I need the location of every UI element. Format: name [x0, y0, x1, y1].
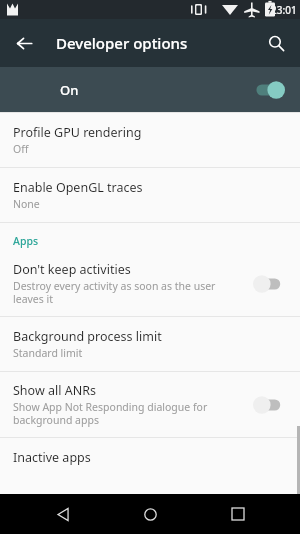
button[interactable]: Don't keep activities	[0, 251, 300, 316]
button[interactable]: Background process limit	[0, 317, 300, 371]
button[interactable]: On	[0, 67, 300, 112]
staticText: Developer options	[56, 33, 188, 53]
staticText: Show App Not Responding dialogue for bac…	[13, 400, 238, 427]
staticText: Apps	[13, 234, 39, 248]
staticText: 23:01	[271, 3, 297, 17]
staticText: Destroy every activity as soon as the us…	[13, 279, 238, 306]
button[interactable]: Back	[38, 494, 88, 534]
staticText: Inactive apps	[13, 449, 91, 466]
button[interactable]: Recent apps	[213, 494, 263, 534]
staticText: None	[13, 197, 40, 211]
staticText: Enable OpenGL traces	[13, 179, 143, 196]
button[interactable]: Show all ANRs	[0, 372, 300, 437]
button[interactable]: On	[252, 79, 286, 101]
staticText: Off	[13, 142, 29, 156]
button[interactable]: Off	[252, 273, 286, 295]
button[interactable]: Home	[125, 494, 175, 534]
staticText: Show all ANRs	[13, 382, 96, 399]
button[interactable]: Search	[252, 19, 300, 67]
button[interactable]: Profile GPU rendering	[0, 113, 300, 167]
staticText: On	[60, 81, 252, 99]
button[interactable]: Enable OpenGL traces	[0, 168, 300, 222]
button[interactable]: Off	[252, 394, 286, 416]
staticText: Profile GPU rendering	[13, 124, 142, 141]
button[interactable]: Inactive apps	[0, 438, 300, 477]
staticText: Background process limit	[13, 328, 162, 345]
staticText: Don't keep activities	[13, 261, 131, 278]
button[interactable]: Navigate up	[0, 19, 48, 67]
staticText: Standard limit	[13, 346, 83, 360]
